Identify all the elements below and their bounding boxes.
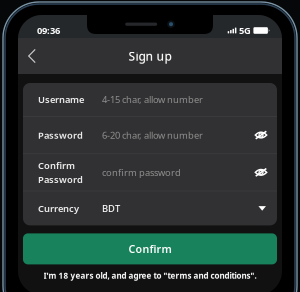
staticText: Confirm bbox=[38, 159, 75, 172]
staticText: Confirm bbox=[128, 242, 171, 256]
button[interactable]: Currency bbox=[23, 191, 277, 225]
staticText: BDT bbox=[102, 202, 120, 215]
staticText: 09:36 bbox=[37, 24, 60, 37]
staticText: 4-15 char, allow number bbox=[102, 93, 203, 106]
button[interactable]: Show password bbox=[248, 117, 274, 153]
button[interactable]: Back bbox=[18, 38, 46, 74]
staticText: Username bbox=[38, 93, 84, 106]
staticText: 6-20 char, allow number bbox=[102, 129, 203, 141]
staticText: I'm 18 years old, and agree to "terms an… bbox=[43, 270, 256, 281]
staticText: confirm password bbox=[102, 166, 181, 179]
button[interactable]: Show password bbox=[248, 154, 274, 191]
staticText: Currency bbox=[38, 202, 79, 215]
button[interactable]: Confirm bbox=[23, 233, 277, 264]
staticText: Sign up bbox=[128, 48, 171, 64]
staticText: Password bbox=[38, 129, 83, 141]
staticText: 5G bbox=[239, 24, 251, 37]
staticText: Password bbox=[38, 173, 83, 185]
